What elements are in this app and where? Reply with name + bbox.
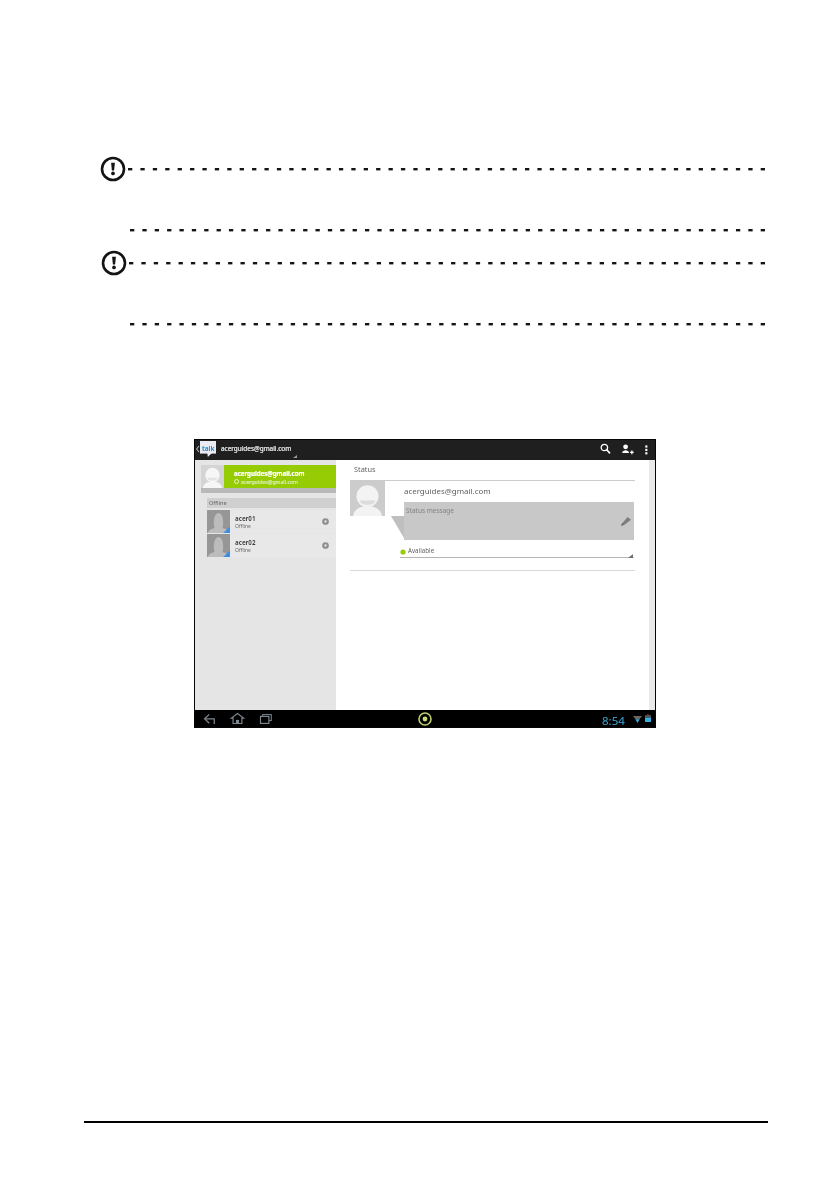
staticText: acerguides@gmail.com <box>234 469 305 477</box>
button[interactable]: Add contact <box>616 440 637 460</box>
button[interactable]: Recent apps <box>256 710 276 727</box>
staticText: Status <box>354 464 376 474</box>
button[interactable]: Home <box>227 710 247 727</box>
staticText: acer02 <box>235 538 256 546</box>
button[interactable]: acerguides@gmail.com <box>224 465 336 488</box>
staticText: Available <box>408 546 435 554</box>
staticText: acerguides@gmail.com <box>241 478 298 485</box>
button[interactable]: Back <box>200 710 217 727</box>
staticText: Offline <box>235 547 251 554</box>
button[interactable]: acer01 <box>207 510 336 533</box>
button[interactable]: More options <box>639 440 653 460</box>
staticText: talk <box>202 444 215 453</box>
staticText: acer01 <box>235 514 256 522</box>
staticText: 8:54 <box>602 713 625 729</box>
staticText: acerguides@gmail.com <box>404 486 491 497</box>
staticText: Status message <box>406 506 455 515</box>
staticText: Offline <box>209 499 227 507</box>
staticText: acerguides@gmail.com <box>221 444 292 453</box>
staticText: Offline <box>235 523 251 530</box>
button[interactable]: Search <box>594 440 615 460</box>
button[interactable]: Status message <box>404 502 634 540</box>
button[interactable]: acer02 <box>207 534 336 557</box>
